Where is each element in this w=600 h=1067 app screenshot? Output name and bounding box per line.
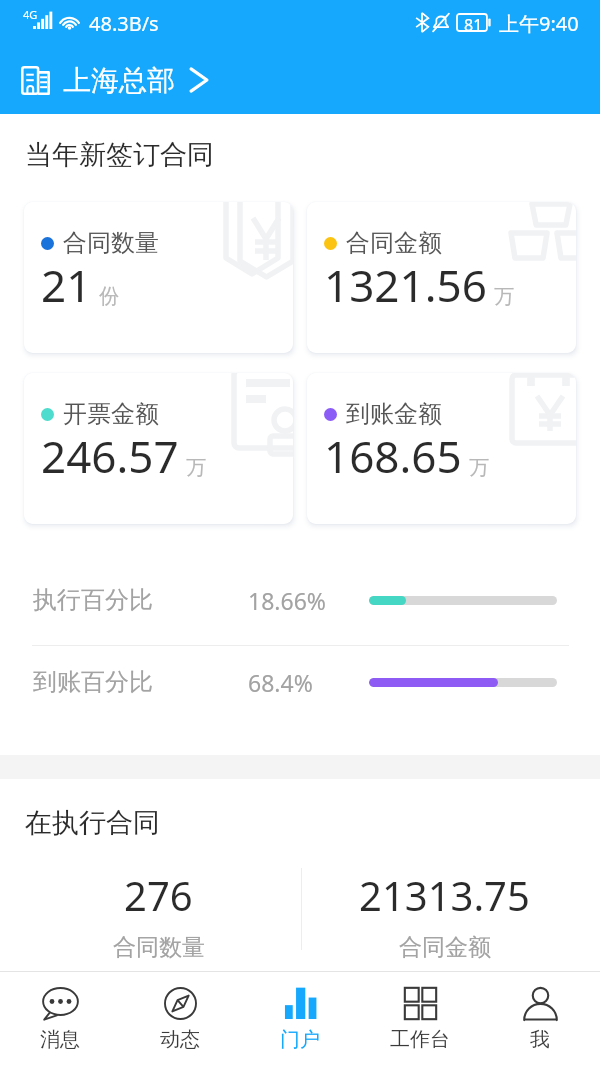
staticText: 万 (469, 455, 489, 480)
other: Company (21, 66, 50, 95)
staticText: 消息 (40, 1027, 80, 1052)
staticText: 门户 (280, 1027, 320, 1052)
button[interactable]: 到账百分比 (0, 646, 600, 718)
staticText: 执行百分比 (33, 585, 153, 615)
staticText: 我 (530, 1027, 550, 1052)
staticText: 合同金额 (346, 228, 442, 258)
staticText: 上海总部 (63, 63, 175, 98)
staticText: 276 (124, 868, 193, 922)
staticText: 48.3B/s (89, 10, 159, 37)
staticText: 到账金额 (346, 399, 442, 429)
staticText: 上午9:40 (499, 10, 579, 37)
staticText: 合同数量 (113, 933, 205, 962)
staticText: 21313.75 (359, 868, 530, 922)
button[interactable]: 276 (16, 868, 301, 962)
button[interactable]: 21313.75 (302, 868, 587, 962)
staticText: 18.66% (248, 585, 326, 616)
button[interactable]: 合同数量 (24, 202, 293, 353)
button[interactable]: 合同金额 (307, 202, 576, 353)
button[interactable]: 执行百分比 (0, 564, 600, 636)
button[interactable]: Company (0, 46, 600, 114)
staticText: 合同数量 (63, 228, 159, 258)
button[interactable]: 门户 (240, 972, 360, 1067)
button[interactable]: 开票金额 (24, 373, 293, 524)
staticText: 份 (99, 284, 119, 309)
staticText: 4G (23, 7, 38, 22)
staticText: 168.65 (324, 426, 462, 486)
staticText: 21 (41, 255, 92, 315)
button[interactable]: 我 (480, 972, 600, 1067)
staticText: 81 (464, 14, 483, 36)
staticText: 合同金额 (399, 933, 491, 962)
staticText: 开票金额 (63, 399, 159, 429)
staticText: 在执行合同 (25, 806, 160, 840)
staticText: 万 (494, 284, 514, 309)
staticText: 工作台 (390, 1027, 450, 1052)
staticText: 动态 (160, 1027, 200, 1052)
staticText: 当年新签订合同 (25, 138, 214, 172)
button[interactable]: 消息 (0, 972, 120, 1067)
staticText: 到账百分比 (33, 667, 153, 697)
staticText: 68.4% (248, 667, 313, 698)
staticText: 246.57 (41, 426, 179, 486)
button[interactable]: 工作台 (360, 972, 480, 1067)
button[interactable]: 动态 (120, 972, 240, 1067)
staticText: 万 (186, 455, 206, 480)
button[interactable]: 到账金额 (307, 373, 576, 524)
staticText: 1321.56 (324, 255, 487, 315)
